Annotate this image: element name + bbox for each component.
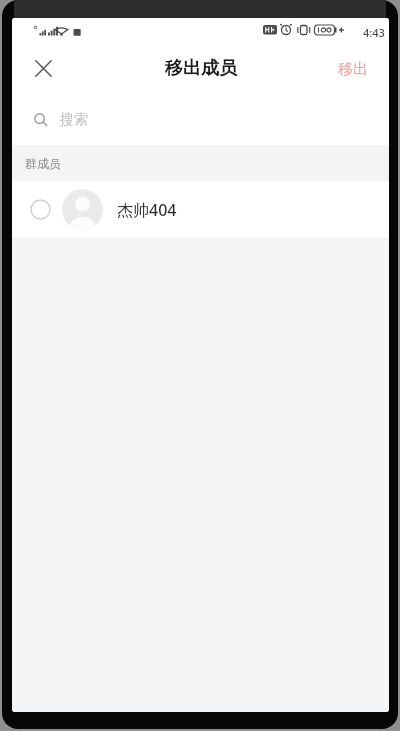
staticText: 移出 [338, 60, 368, 79]
staticText: 4:43 [363, 25, 385, 40]
staticText: 移出成员 [165, 57, 237, 80]
staticText: 群成员 [25, 156, 61, 171]
button[interactable] [35, 60, 52, 77]
button[interactable]: 搜索 [12, 90, 389, 145]
button[interactable]: 移出 [332, 54, 374, 85]
button[interactable]: 杰帅404 [12, 181, 389, 238]
staticText: 搜索 [60, 111, 88, 129]
staticText: 杰帅404 [117, 199, 177, 221]
